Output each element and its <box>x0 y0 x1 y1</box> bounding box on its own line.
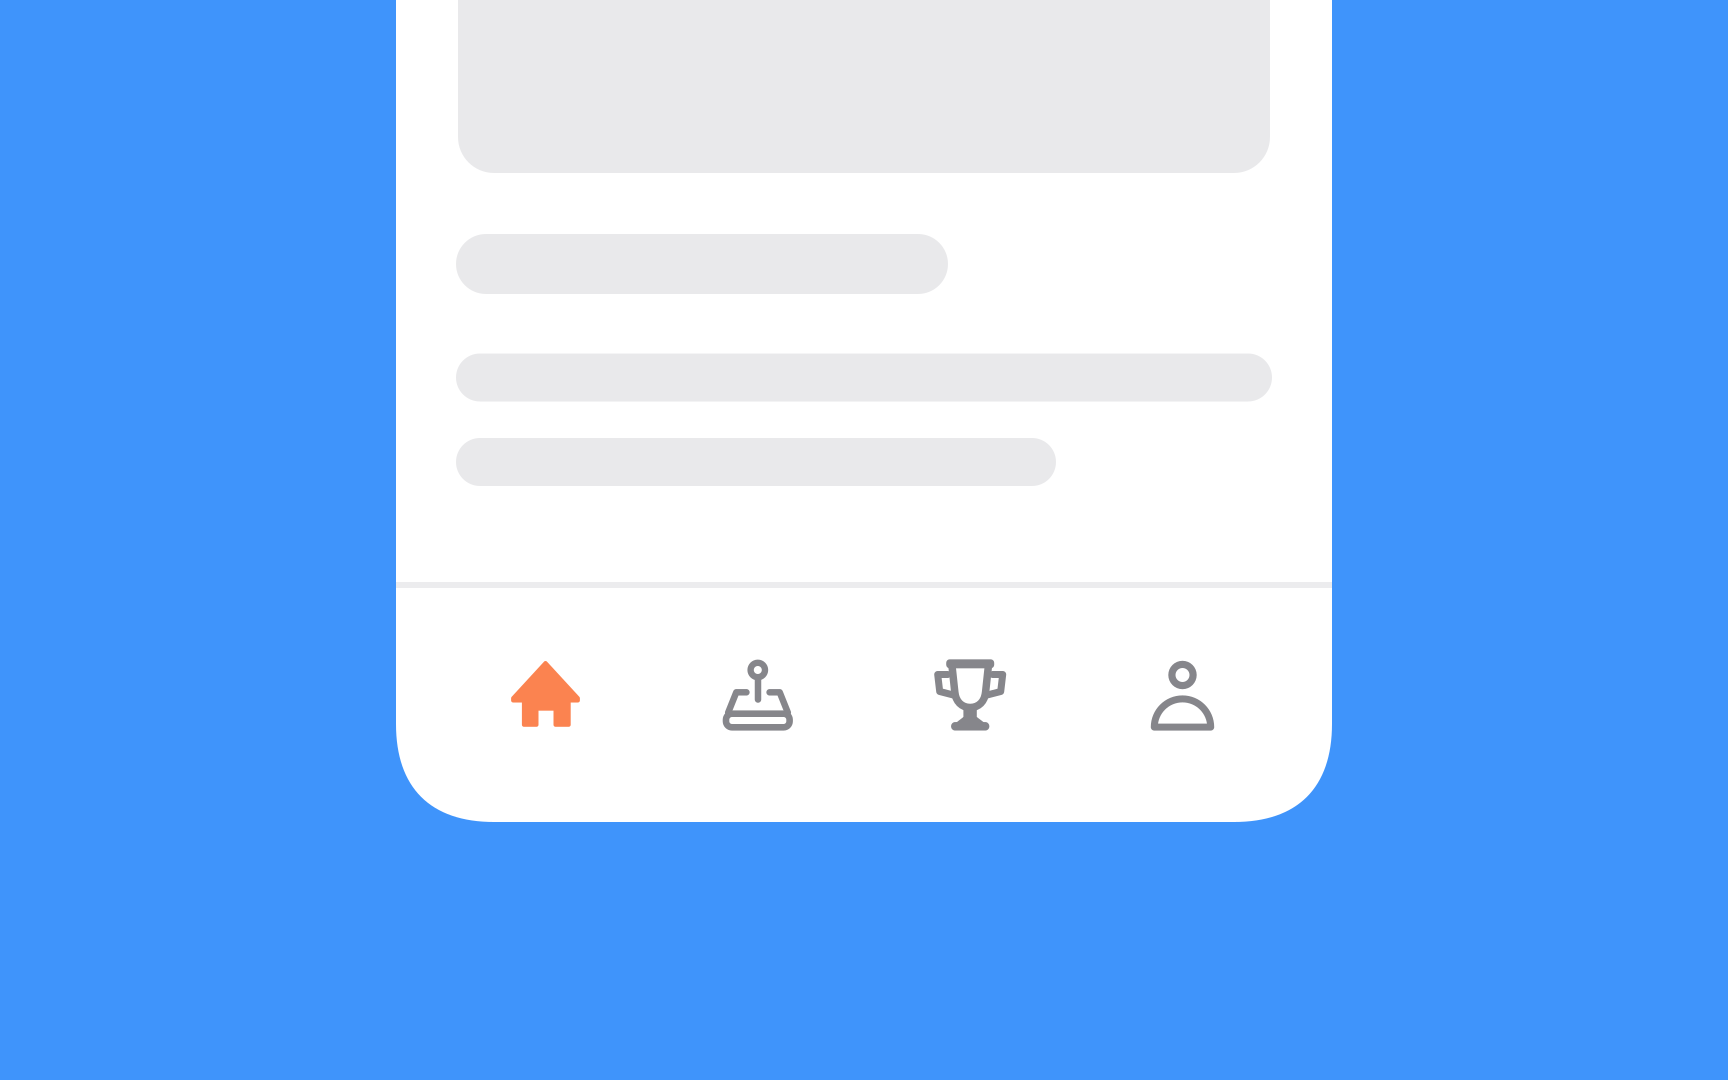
button[interactable]: Play <box>652 588 864 822</box>
button[interactable]: Profile <box>1076 588 1288 822</box>
button[interactable]: Home <box>439 588 651 822</box>
button[interactable]: Leaderboard <box>864 588 1076 822</box>
